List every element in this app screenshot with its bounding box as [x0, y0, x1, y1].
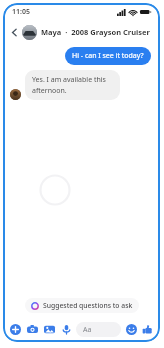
- button[interactable]: Like: [140, 322, 155, 337]
- button[interactable]: Emoji: [124, 322, 139, 337]
- button[interactable]: Yes. I am available this afternoon.: [25, 70, 120, 100]
- staticText: 11:05: [12, 7, 30, 17]
- button[interactable]: Profile photo: [22, 25, 37, 40]
- button[interactable]: Camera: [25, 322, 40, 337]
- staticText: Hi - can I see it today?: [72, 51, 144, 61]
- staticText: Suggested questions to ask: [43, 301, 133, 310]
- button[interactable]: Aa: [76, 322, 121, 337]
- button[interactable]: Hi - can I see it today?: [65, 47, 151, 65]
- staticText: Yes. I am available this afternoon.: [32, 75, 113, 95]
- button[interactable]: Maya · 2008 Grayson Cruiser: [41, 27, 150, 37]
- button[interactable]: Back: [7, 25, 21, 39]
- staticText: Aa: [83, 325, 92, 335]
- button[interactable]: Maya avatar: [10, 89, 21, 100]
- button[interactable]: Voice message: [59, 322, 74, 337]
- button[interactable]: Suggested questions to ask: [25, 298, 139, 313]
- button[interactable]: Add: [8, 322, 23, 337]
- button[interactable]: Gallery: [42, 322, 57, 337]
